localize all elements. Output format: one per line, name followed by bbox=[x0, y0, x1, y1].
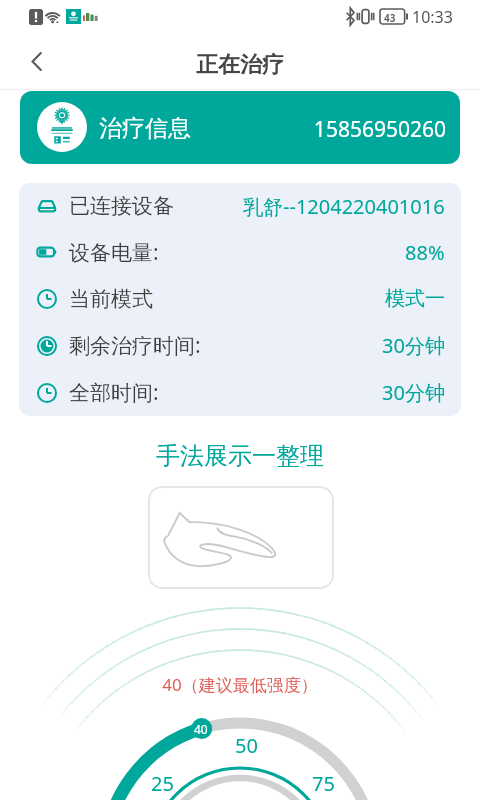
staticText: 剩余治疗时间: bbox=[69, 331, 201, 360]
staticText: 43 bbox=[384, 11, 396, 25]
staticText: 40（建议最低强度） bbox=[0, 673, 480, 696]
staticText: 治疗信息 bbox=[99, 114, 191, 143]
button[interactable]: Back bbox=[14, 39, 59, 84]
staticText: 40 bbox=[194, 721, 208, 737]
button[interactable]: 治疗信息 bbox=[20, 91, 460, 164]
staticText: 模式一 bbox=[385, 286, 445, 311]
staticText: 10:33 bbox=[412, 6, 453, 28]
staticText: 全部时间: bbox=[69, 378, 159, 407]
staticText: 25 bbox=[151, 770, 174, 797]
staticText: 15856950260 bbox=[20, 115, 446, 144]
staticText: 50 bbox=[235, 732, 258, 759]
staticText: 88% bbox=[405, 239, 445, 266]
staticText: 30分钟 bbox=[382, 332, 445, 359]
staticText: 30分钟 bbox=[382, 379, 445, 406]
staticText: 设备电量: bbox=[69, 238, 159, 267]
staticText: 手法展示一整理 bbox=[0, 441, 480, 471]
staticText: 正在治疗 bbox=[0, 51, 480, 79]
staticText: 已连接设备 bbox=[69, 193, 174, 219]
staticText: 当前模式 bbox=[69, 286, 153, 312]
staticText: 75 bbox=[312, 770, 335, 797]
staticText: 乳舒--1204220401016 bbox=[243, 193, 445, 220]
